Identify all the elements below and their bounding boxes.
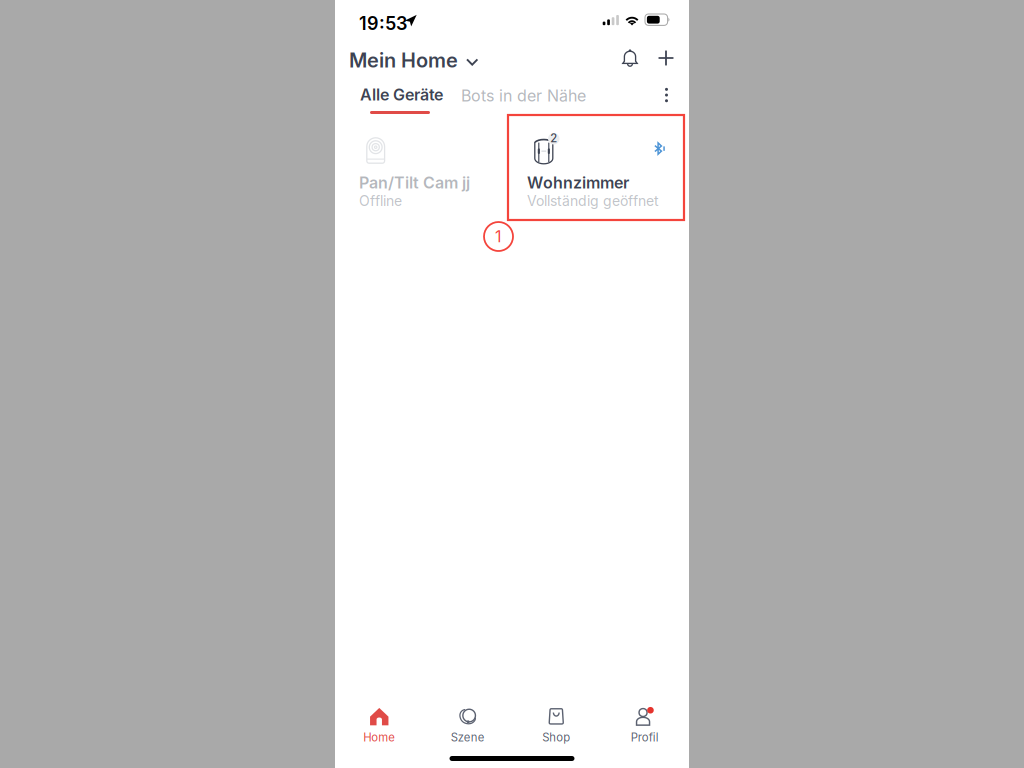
button[interactable]: 2	[508, 116, 684, 219]
button[interactable]: Szene	[423, 700, 512, 752]
button[interactable]: More options	[657, 80, 676, 110]
staticText: Shop	[542, 731, 570, 744]
staticText: 2	[550, 131, 557, 145]
button[interactable]: Bots in der Nähe	[456, 80, 591, 111]
staticText: Profil	[631, 731, 659, 744]
staticText: 1	[495, 227, 502, 246]
staticText: Bots in der Nähe	[461, 86, 586, 105]
staticText: 19:53	[359, 12, 407, 34]
staticText: Szene	[451, 731, 485, 744]
button[interactable]: Home	[335, 700, 423, 752]
staticText: Alle Geräte	[360, 85, 443, 104]
button[interactable]: Add device	[649, 41, 683, 75]
staticText: Home	[363, 731, 395, 744]
button[interactable]: Mein Home	[349, 40, 478, 80]
staticText: Mein Home	[349, 48, 458, 72]
staticText: Vollständig geöffnet	[527, 192, 659, 209]
button[interactable]: Profil	[600, 700, 689, 752]
staticText: Pan/Tilt Cam jj	[359, 173, 470, 192]
button[interactable]: Notifications	[613, 41, 647, 76]
button[interactable]: Pan/Tilt Cam jj	[340, 116, 516, 219]
button[interactable]: Shop	[512, 700, 600, 752]
button[interactable]: Alle Geräte	[356, 84, 444, 118]
staticText: Offline	[359, 192, 402, 209]
staticText: Wohnzimmer	[527, 173, 629, 192]
